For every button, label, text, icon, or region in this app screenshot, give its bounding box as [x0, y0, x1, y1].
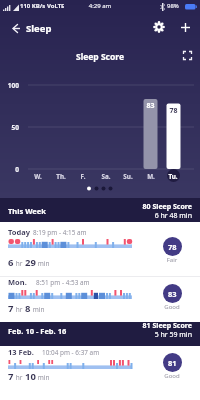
staticText: Feb. 10 - Feb. 16	[8, 326, 67, 336]
staticText: 8:51 pm - 4:53 am	[36, 278, 90, 287]
button[interactable]	[0, 222, 200, 275]
staticText: Today	[8, 227, 31, 237]
staticText: 4:29 am	[78, 2, 122, 10]
staticText: Fair	[157, 256, 187, 264]
button[interactable]: 78	[163, 237, 182, 256]
staticText: hr	[14, 305, 25, 314]
button[interactable]	[181, 23, 190, 32]
staticText: 78	[168, 242, 177, 252]
staticText: 81 Sleep Score	[92, 321, 192, 331]
staticText: Sleep	[26, 22, 52, 35]
staticText: 83	[168, 289, 177, 299]
staticText: Sleep Score	[0, 51, 200, 63]
staticText: Su.	[118, 172, 138, 181]
staticText: 81	[168, 358, 177, 368]
button[interactable]	[0, 198, 200, 222]
button[interactable]: 81	[163, 353, 182, 372]
staticText: min	[36, 259, 50, 268]
button[interactable]	[183, 51, 192, 60]
staticText: 8:19 pm - 4:15 am	[33, 228, 87, 237]
button[interactable]	[0, 346, 200, 400]
staticText: hr	[14, 259, 25, 268]
staticText: min	[36, 373, 50, 382]
staticText: 0	[4, 165, 19, 174]
staticText: 98%	[167, 2, 179, 10]
button[interactable]: 6	[8, 256, 50, 269]
staticText: min	[31, 305, 45, 314]
staticText: M.	[141, 172, 161, 181]
staticText: This Week	[8, 206, 46, 216]
staticText: 80 Sleep Score	[92, 202, 192, 212]
staticText: Tu.	[163, 172, 183, 181]
staticText: 10	[25, 370, 36, 383]
staticText: 7	[8, 302, 14, 315]
staticText: 7	[8, 370, 14, 383]
staticText: hr	[14, 373, 25, 382]
staticText: 6 hr 48 min	[92, 211, 192, 221]
staticText: 5 hr 59 min	[92, 330, 192, 340]
staticText: F.	[73, 172, 93, 181]
staticText: 100	[4, 81, 19, 90]
staticText: 13 Feb.	[8, 347, 34, 357]
button[interactable]	[11, 24, 20, 33]
staticText: W.	[28, 172, 48, 181]
button[interactable]: 83	[163, 284, 182, 303]
staticText: 10:04 pm - 6:37 am	[42, 348, 100, 357]
staticText: 29	[25, 256, 36, 269]
button[interactable]: 7	[8, 302, 45, 315]
button[interactable]	[0, 276, 200, 322]
staticText: Mon.	[8, 277, 27, 287]
staticText: 6	[8, 256, 14, 269]
staticText: Sa.	[96, 172, 116, 181]
staticText: 83	[143, 101, 158, 111]
staticText: Good	[157, 372, 187, 380]
button[interactable]	[153, 21, 165, 33]
staticText: 8	[25, 302, 31, 315]
staticText: 50	[4, 123, 19, 132]
staticText: Th.	[51, 172, 71, 181]
button[interactable]: 7	[8, 370, 50, 383]
staticText: 110 KB/s VoLTE	[20, 2, 65, 10]
staticText: Good	[157, 303, 187, 311]
staticText: 78	[166, 106, 181, 116]
